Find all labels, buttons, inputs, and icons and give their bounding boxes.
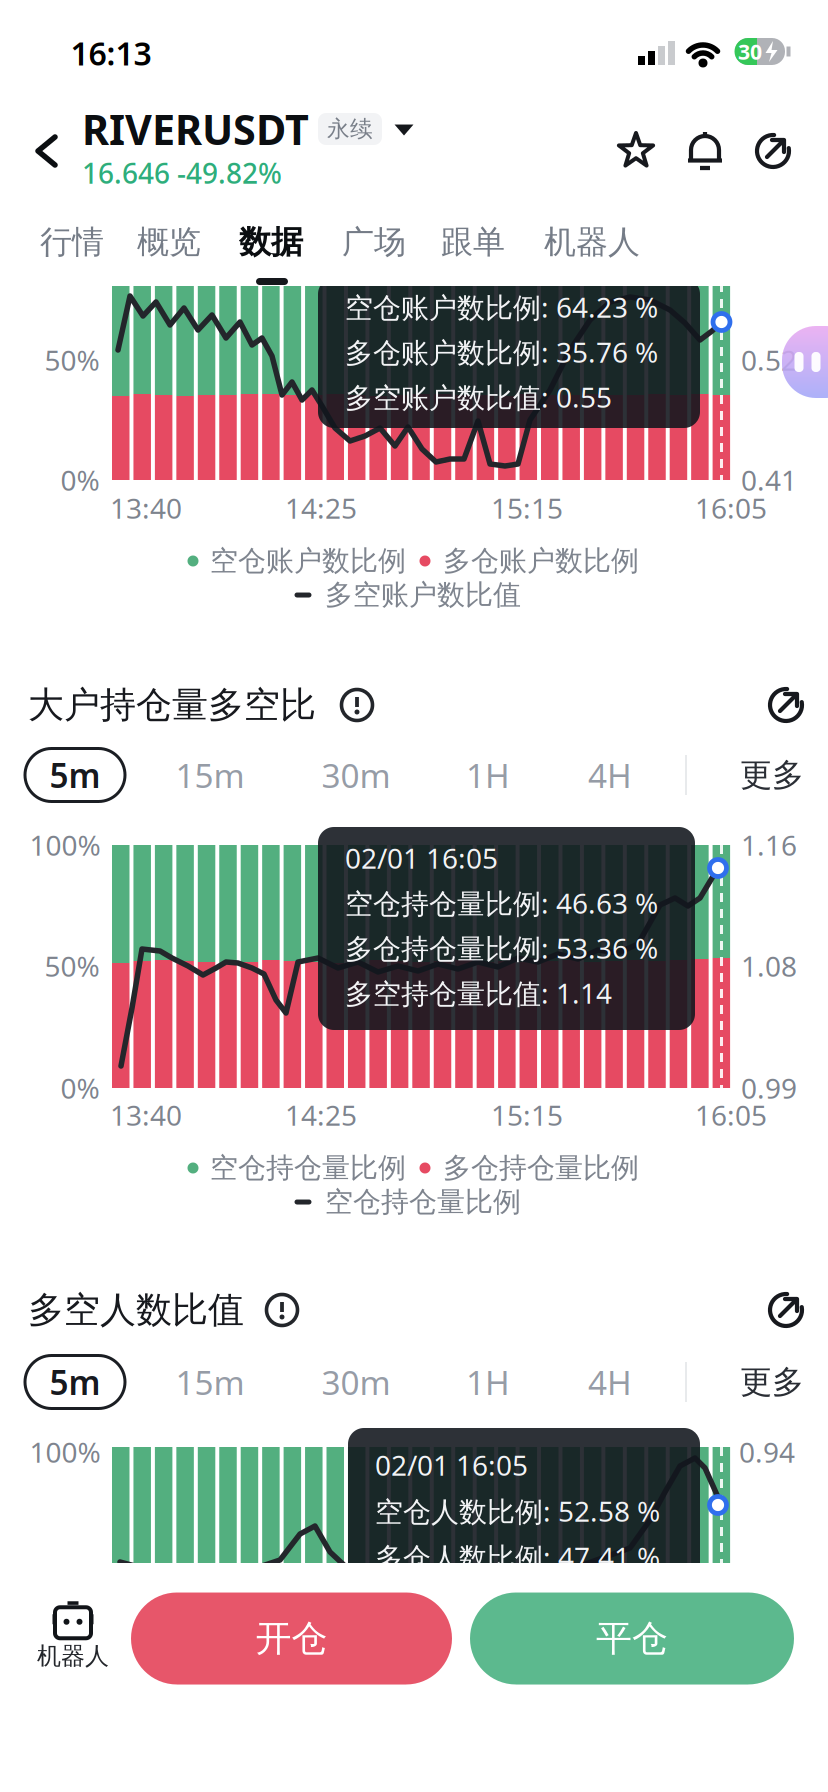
button[interactable]: 30m — [321, 753, 390, 797]
staticText: 14:25 — [285, 1096, 357, 1134]
staticText: 开仓 — [255, 1616, 327, 1661]
staticText: 多仓人数比例: 47.41 % — [375, 1538, 660, 1576]
button[interactable]: 1H — [466, 1360, 510, 1404]
button[interactable]: 机器人 — [544, 222, 640, 262]
staticText: 空仓持仓量比例: 46.63 % — [345, 884, 658, 922]
staticText: 15m — [175, 753, 244, 797]
staticText: 机器人 — [544, 222, 640, 262]
staticText: 更多 — [740, 755, 804, 795]
button[interactable]: 收藏 — [617, 131, 655, 171]
staticText: 13:40 — [110, 489, 182, 527]
button[interactable]: 说明 — [266, 1294, 297, 1325]
staticText: 0% — [60, 1069, 99, 1107]
staticText: 16:05 — [695, 489, 767, 527]
staticText: 1H — [466, 1360, 510, 1404]
staticText: 15m — [175, 1360, 244, 1404]
staticText: 0% — [60, 461, 99, 499]
staticText: 30 — [738, 37, 762, 66]
staticText: 100% — [29, 1433, 100, 1471]
staticText: 多仓持仓量比例: 53.36 % — [345, 929, 658, 967]
staticText: 跟单 — [441, 222, 505, 262]
staticText: 概览 — [137, 222, 201, 262]
staticText: 多仓持仓量比例 — [443, 1151, 639, 1185]
button[interactable]: 行情 — [40, 222, 104, 262]
staticText: 5m — [49, 753, 100, 797]
button[interactable]: 提醒 — [687, 131, 723, 171]
staticText: RIVERUSDT — [82, 102, 309, 156]
staticText: 数据 — [239, 222, 303, 262]
staticText: 0.52 — [741, 341, 797, 379]
button[interactable]: 概览 — [137, 222, 201, 262]
staticText: 30m — [321, 1360, 390, 1404]
staticText: 空仓持仓量比例 — [325, 1185, 521, 1219]
staticText: 多空人数比值 — [28, 1288, 244, 1332]
staticText: 1.08 — [741, 947, 797, 985]
button[interactable]: 30m — [321, 1360, 390, 1404]
button[interactable]: 说明 — [341, 689, 372, 720]
staticText: 机器人 — [37, 1641, 109, 1671]
staticText: 更多 — [740, 1362, 804, 1402]
staticText: 永续 — [327, 115, 373, 143]
staticText: 15:15 — [491, 1096, 563, 1134]
button[interactable]: 1H — [466, 753, 510, 797]
button[interactable]: 分享 — [767, 1291, 805, 1329]
button[interactable]: 广场 — [342, 222, 406, 262]
staticText: 14:25 — [285, 489, 357, 527]
staticText: 0.99 — [741, 1069, 797, 1107]
staticText: 0.41 — [741, 461, 797, 499]
button[interactable]: 切换合约 — [394, 124, 413, 135]
staticText: 0.94 — [739, 1433, 795, 1471]
button[interactable]: 跟单 — [441, 222, 505, 262]
staticText: 空仓账户数比例 — [210, 544, 406, 578]
staticText: 50% — [44, 947, 99, 985]
staticText: 空仓持仓量比例 — [210, 1151, 406, 1185]
staticText: 行情 — [40, 222, 104, 262]
staticText: 空仓人数比例: 52.58 % — [375, 1492, 660, 1530]
staticText: 02/01 16:05 — [345, 839, 498, 877]
staticText: 多仓账户数比例: 35.76 % — [345, 333, 658, 371]
button[interactable]: 分享 — [754, 132, 792, 170]
staticText: 平仓 — [596, 1616, 668, 1661]
staticText: 广场 — [342, 222, 406, 262]
button[interactable]: 更多 — [740, 1362, 804, 1402]
button[interactable]: 数据 — [239, 222, 303, 262]
staticText: 16.646 -49.82% — [82, 154, 282, 192]
button[interactable]: 5m — [25, 748, 125, 801]
button[interactable]: 4H — [588, 753, 632, 797]
button[interactable]: 5m — [25, 1355, 125, 1408]
button[interactable]: 4H — [588, 1360, 632, 1404]
staticText: 02/01 16:05 — [375, 1446, 528, 1484]
staticText: 空仓账户数比例: 64.23 % — [345, 288, 658, 326]
staticText: 多空账户数比值: 0.55 — [345, 378, 612, 416]
button[interactable]: 分享 — [767, 686, 805, 724]
button[interactable]: 15m — [175, 1360, 244, 1404]
staticText: 30m — [321, 753, 390, 797]
staticText: 5m — [49, 1360, 100, 1404]
staticText: 4H — [588, 1360, 632, 1404]
staticText: 多空持仓量比值: 1.14 — [345, 974, 612, 1012]
staticText: 13:40 — [110, 1096, 182, 1134]
button[interactable]: 永续 — [318, 113, 382, 145]
button[interactable]: 助手 — [782, 326, 828, 398]
button[interactable]: 开仓 — [131, 1592, 452, 1684]
button[interactable]: 机器人 — [37, 1601, 109, 1671]
staticText: 100% — [29, 826, 100, 864]
staticText: 50% — [44, 341, 99, 379]
button[interactable]: 返回 — [31, 135, 63, 167]
staticText: 大户持仓量多空比 — [28, 683, 316, 727]
staticText: 1H — [466, 753, 510, 797]
staticText: 多空账户数比值 — [325, 578, 521, 612]
staticText: 15:15 — [491, 489, 563, 527]
staticText: 16:13 — [70, 32, 151, 74]
button[interactable]: 15m — [175, 753, 244, 797]
staticText: 4H — [588, 753, 632, 797]
button[interactable]: 更多 — [740, 755, 804, 795]
staticText: 1.16 — [741, 826, 797, 864]
staticText: 16:05 — [695, 1096, 767, 1134]
button[interactable]: 平仓 — [470, 1592, 794, 1684]
staticText: 多仓账户数比例 — [443, 544, 639, 578]
